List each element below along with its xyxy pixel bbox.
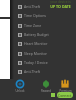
button[interactable]: your device is [44, 0, 76, 8]
staticText: Reward [41, 89, 51, 93]
staticText: Unlock [15, 89, 25, 93]
staticText: your device is [50, 0, 71, 4]
button[interactable]: Battery Budget [0, 30, 76, 39]
button[interactable]: Reward [36, 79, 56, 93]
button[interactable]: Unlock [10, 79, 30, 93]
staticText: Today / Device [24, 60, 48, 65]
button[interactable]: Anti-Theft [0, 2, 76, 11]
button[interactable]: Time Options [0, 11, 76, 20]
button[interactable]: Anti-Theft [0, 67, 76, 76]
staticText: Time Options [24, 13, 47, 18]
staticText: Premium [59, 89, 72, 93]
button[interactable]: Today / Device [0, 58, 76, 67]
button[interactable]: Heart Monitor [0, 39, 76, 48]
button[interactable]: Premium [55, 79, 75, 93]
staticText: Sleep Monitor [24, 51, 48, 56]
staticText: Connect [58, 93, 72, 98]
button[interactable]: Time Zone [0, 21, 76, 30]
staticText: Time Zone [24, 23, 42, 28]
staticText: UP TO DATE [50, 4, 71, 8]
button[interactable]: Connect [57, 92, 73, 98]
staticText: Battery Budget [24, 32, 49, 37]
button[interactable]: Sleep Monitor [0, 49, 76, 58]
staticText: Heart Monitor [24, 41, 48, 46]
staticText: Anti-Theft [24, 4, 41, 9]
staticText: Anti-Theft [24, 69, 41, 74]
